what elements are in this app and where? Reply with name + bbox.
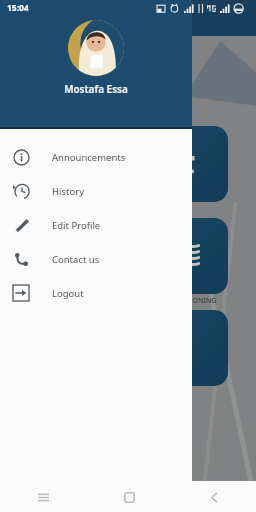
button[interactable]: Back [200, 483, 228, 511]
staticText: 15:04 [7, 2, 29, 14]
button[interactable]: Edit Profile [0, 208, 192, 242]
staticText: History [52, 185, 84, 198]
staticText: Contact us [52, 253, 100, 266]
button[interactable]: Logout [0, 276, 192, 310]
staticText: AIR CONDITIONING [150, 296, 217, 306]
staticText: Edit Profile [52, 219, 101, 232]
button[interactable] [150, 310, 228, 386]
button[interactable] [150, 126, 228, 202]
button[interactable]: Home [115, 483, 143, 511]
button[interactable]: Recents [29, 483, 57, 511]
button[interactable]: Announcements [0, 140, 192, 174]
button[interactable]: History [0, 174, 192, 208]
staticText: Announcements [52, 151, 126, 164]
button[interactable]: Contact us [0, 242, 192, 276]
button[interactable] [150, 218, 228, 294]
staticText: Mostafa Essa [64, 82, 128, 96]
staticText: Logout [52, 287, 84, 300]
